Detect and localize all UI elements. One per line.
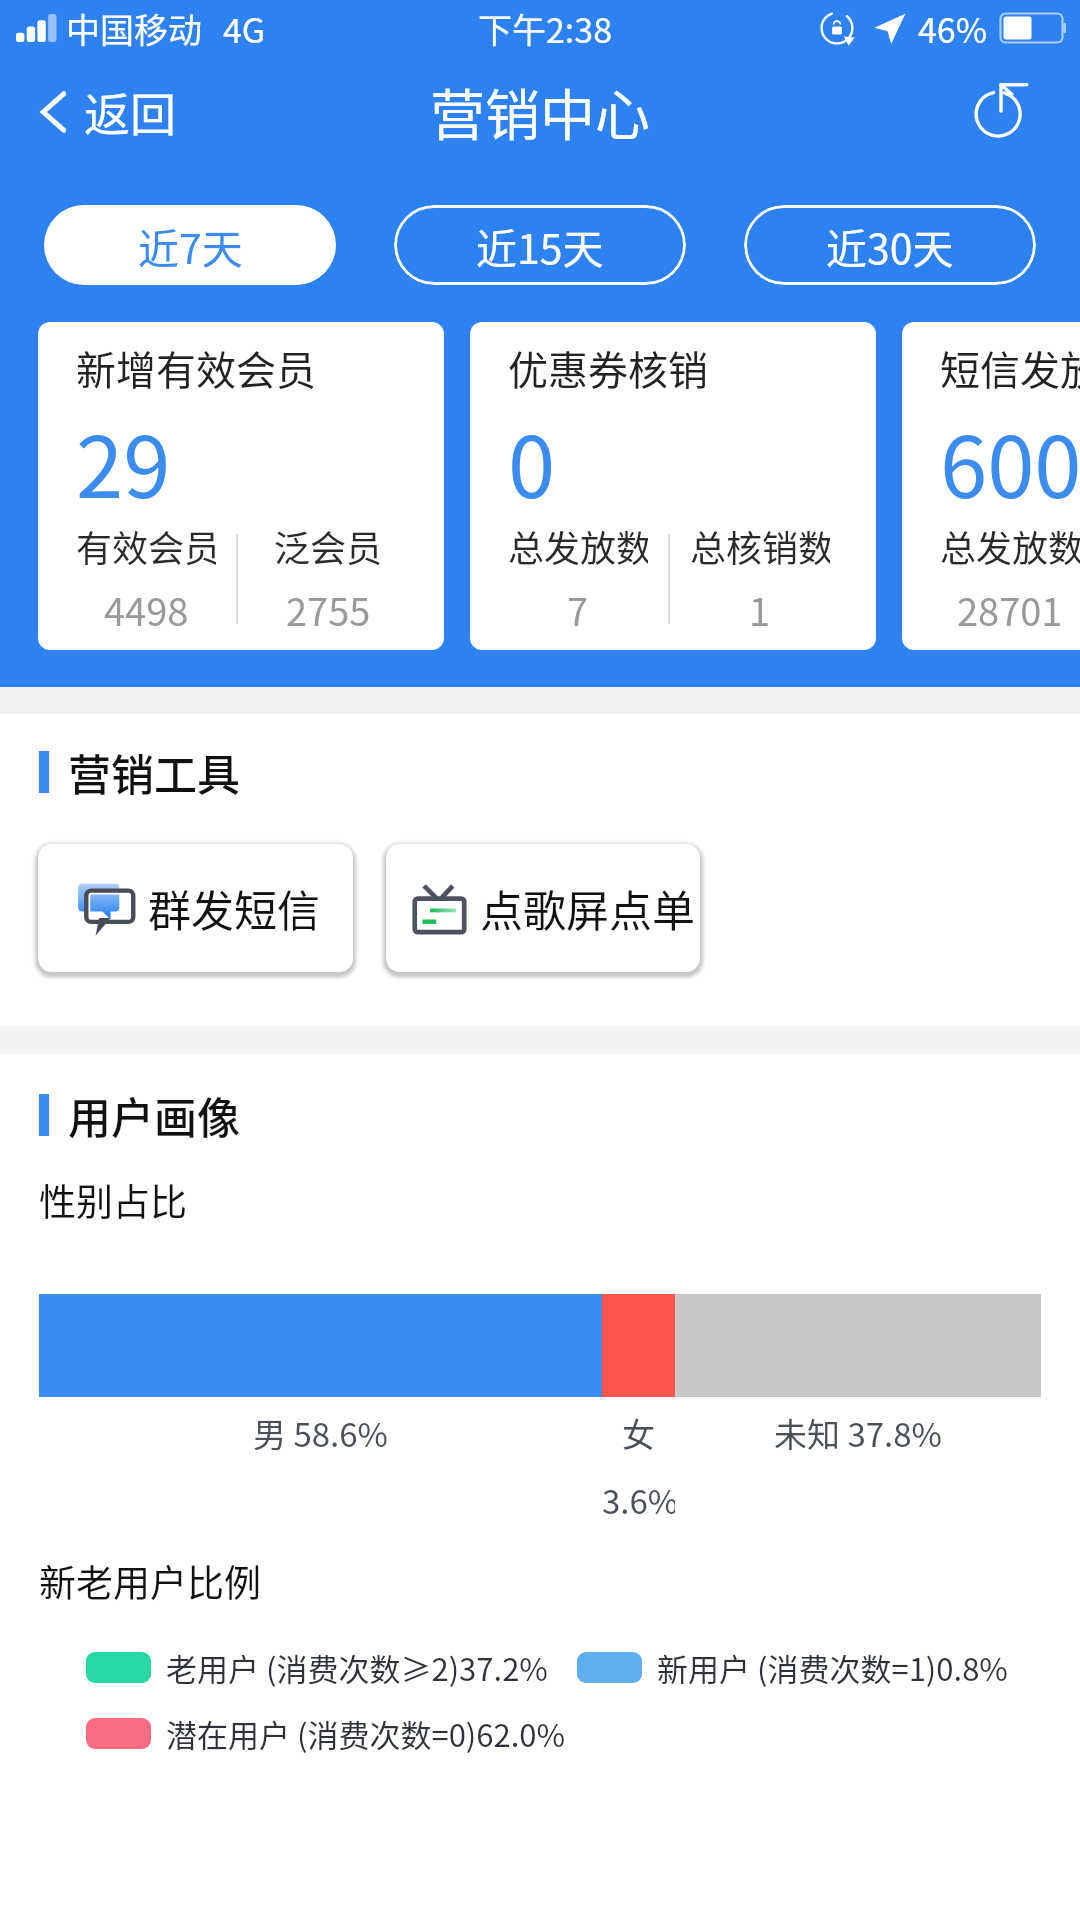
button[interactable]: 返回 (0, 64, 196, 159)
button[interactable]: 新增有效会员 (38, 322, 444, 650)
staticText: 4G (223, 4, 266, 53)
staticText: 群发短信 (148, 877, 320, 939)
staticText: 返回 (84, 78, 176, 145)
button[interactable]: 优惠券核销 (470, 322, 876, 650)
staticText: 2755 (286, 582, 371, 637)
button[interactable]: 群发短信 (38, 844, 353, 972)
staticText: 总发放数 (508, 520, 648, 572)
button[interactable]: 短信发放 (902, 322, 1080, 650)
staticText: 未知 37.8% (774, 1409, 942, 1457)
staticText: 下午2:38 (478, 4, 613, 53)
staticText: 600 (940, 399, 1080, 522)
staticText: 有效会员 (76, 520, 216, 572)
staticText: 用户画像 (68, 1084, 240, 1146)
staticText: 营销工具 (68, 741, 240, 803)
staticText: 老用户 (消费次数≥2)37.2% (166, 1645, 548, 1690)
staticText: 近7天 (138, 216, 243, 275)
staticText: 优惠券核销 (508, 339, 708, 397)
staticText: 新老用户比例 (39, 1554, 261, 1608)
staticText: 0 (508, 399, 556, 522)
staticText: 近30天 (826, 216, 954, 275)
staticText: 性别占比 (39, 1173, 187, 1227)
staticText: 29 (76, 399, 171, 522)
button[interactable]: 点歌屏点单 (386, 844, 700, 972)
staticText: 男 58.6% (253, 1409, 388, 1457)
staticText: 新增有效会员 (76, 339, 316, 397)
button[interactable]: 近15天 (394, 205, 686, 285)
staticText: 总核销数 (690, 520, 830, 572)
button[interactable]: 刷新 (948, 64, 1080, 158)
staticText: 46% (918, 4, 988, 53)
staticText: 近15天 (476, 216, 604, 275)
staticText: 中国移动 (66, 4, 202, 53)
staticText: 1 (749, 582, 771, 637)
staticText: 28701 (957, 582, 1063, 637)
staticText: 总发放数 (940, 520, 1080, 572)
staticText: 女 (622, 1409, 655, 1457)
staticText: 7 (567, 582, 589, 637)
staticText: 4498 (104, 582, 189, 637)
staticText: 泛会员 (274, 520, 383, 572)
staticText: 新用户 (消费次数=1)0.8% (657, 1645, 1008, 1690)
button[interactable]: 近7天 (44, 205, 336, 285)
staticText: 营销中心 (430, 71, 651, 151)
staticText: 潜在用户 (消费次数=0)62.0% (166, 1711, 566, 1756)
staticText: 3.6% (602, 1476, 675, 1524)
staticText: 短信发放 (940, 339, 1080, 397)
button[interactable]: 近30天 (744, 205, 1036, 285)
staticText: 点歌屏点单 (480, 877, 695, 939)
